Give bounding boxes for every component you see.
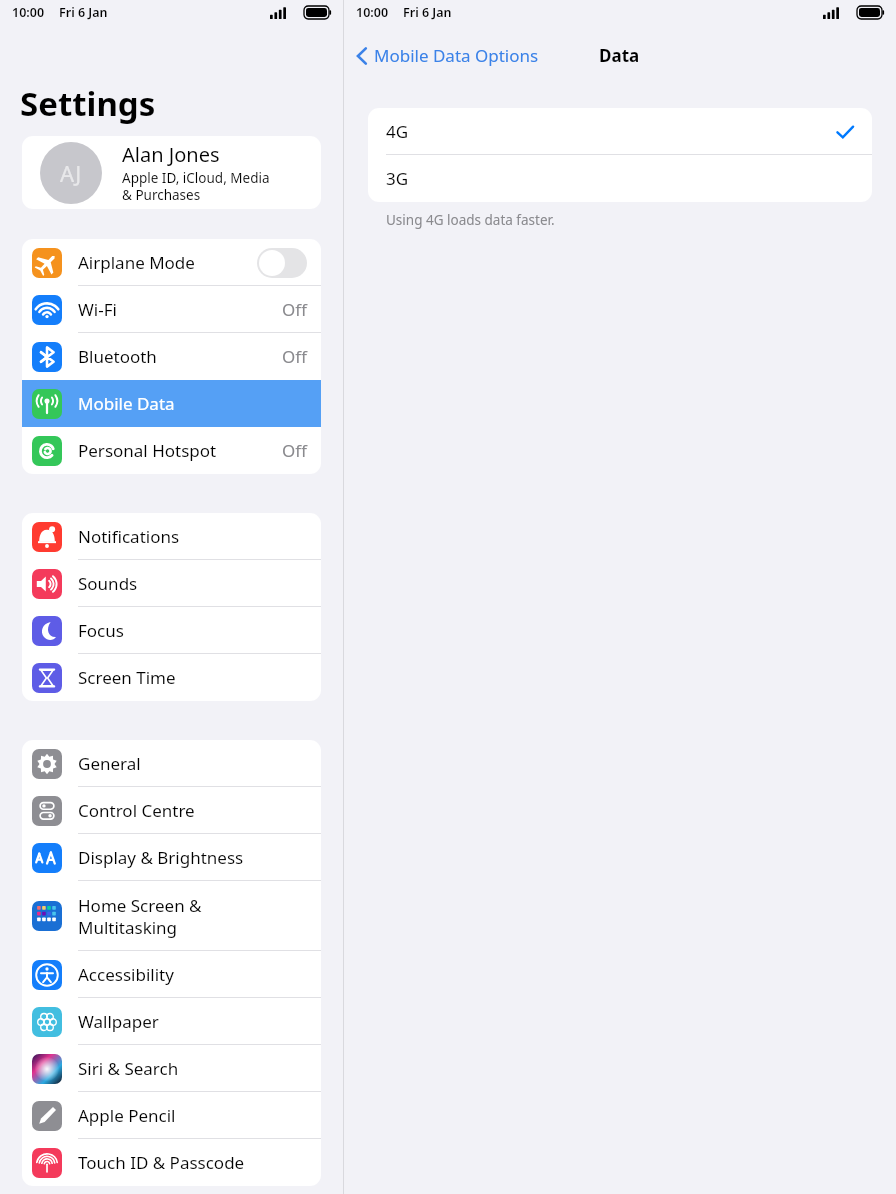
button[interactable]: Wi-Fi xyxy=(22,286,321,333)
staticText: Mobile Data xyxy=(78,392,175,415)
staticText: AJ xyxy=(60,158,82,188)
button[interactable]: Mobile Data Options xyxy=(356,44,539,67)
staticText: General xyxy=(78,752,141,775)
button[interactable]: Sounds xyxy=(22,560,321,607)
staticText: Bluetooth xyxy=(78,345,157,368)
button[interactable]: Control Centre xyxy=(22,787,321,834)
staticText: Off xyxy=(282,439,307,462)
staticText: Settings xyxy=(20,81,156,126)
staticText: 10:00 xyxy=(12,4,45,21)
staticText: Apple Pencil xyxy=(78,1104,176,1127)
staticText: Sounds xyxy=(78,572,138,595)
button[interactable]: Notifications xyxy=(22,513,321,560)
staticText: Accessibility xyxy=(78,963,174,986)
staticText: Mobile Data Options xyxy=(374,44,539,67)
button[interactable]: Wallpaper xyxy=(22,998,321,1045)
staticText: Fri 6 Jan xyxy=(59,4,108,21)
staticText: Off xyxy=(282,298,307,321)
button[interactable]: Airplane Mode toggle xyxy=(257,248,307,278)
button[interactable]: Touch ID & Passcode xyxy=(22,1139,321,1186)
staticText: Display & Brightness xyxy=(78,846,244,869)
staticText: 4G xyxy=(386,120,836,143)
staticText: 3G xyxy=(386,167,409,190)
staticText: Off xyxy=(282,345,307,368)
button[interactable]: Mobile Data xyxy=(22,380,321,427)
button[interactable]: General xyxy=(22,740,321,787)
button[interactable]: Display & Brightness xyxy=(22,834,321,881)
staticText: Personal Hotspot xyxy=(78,439,217,462)
staticText: Airplane Mode xyxy=(78,251,195,274)
staticText: Apple ID, iCloud, Media & Purchases xyxy=(122,169,270,204)
button[interactable]: AJ xyxy=(22,136,321,209)
staticText: Notifications xyxy=(78,525,180,548)
staticText: 10:00 xyxy=(356,4,389,21)
staticText: Data xyxy=(599,44,640,67)
staticText: Touch ID & Passcode xyxy=(78,1151,245,1174)
staticText: Fri 6 Jan xyxy=(403,4,452,21)
staticText: Control Centre xyxy=(78,799,195,822)
staticText: Wi-Fi xyxy=(78,298,117,321)
button[interactable]: Accessibility xyxy=(22,951,321,998)
staticText: Using 4G loads data faster. xyxy=(386,211,555,229)
staticText: Siri & Search xyxy=(78,1057,179,1080)
button[interactable]: Siri & Search xyxy=(22,1045,321,1092)
button[interactable]: Personal Hotspot xyxy=(22,427,321,474)
staticText: Home Screen & Multitasking xyxy=(78,894,202,939)
staticText: Wallpaper xyxy=(78,1010,159,1033)
staticText: Focus xyxy=(78,619,124,642)
button[interactable]: Bluetooth xyxy=(22,333,321,380)
button[interactable]: Screen Time xyxy=(22,654,321,701)
button[interactable]: Focus xyxy=(22,607,321,654)
button[interactable]: Home Screen & Multitasking xyxy=(22,881,321,951)
button[interactable]: Apple Pencil xyxy=(22,1092,321,1139)
button[interactable]: 4G xyxy=(368,108,872,155)
staticText: Alan Jones xyxy=(122,141,220,168)
button[interactable]: Airplane Mode xyxy=(22,239,321,286)
button[interactable]: 3G xyxy=(368,155,872,202)
staticText: Screen Time xyxy=(78,666,176,689)
